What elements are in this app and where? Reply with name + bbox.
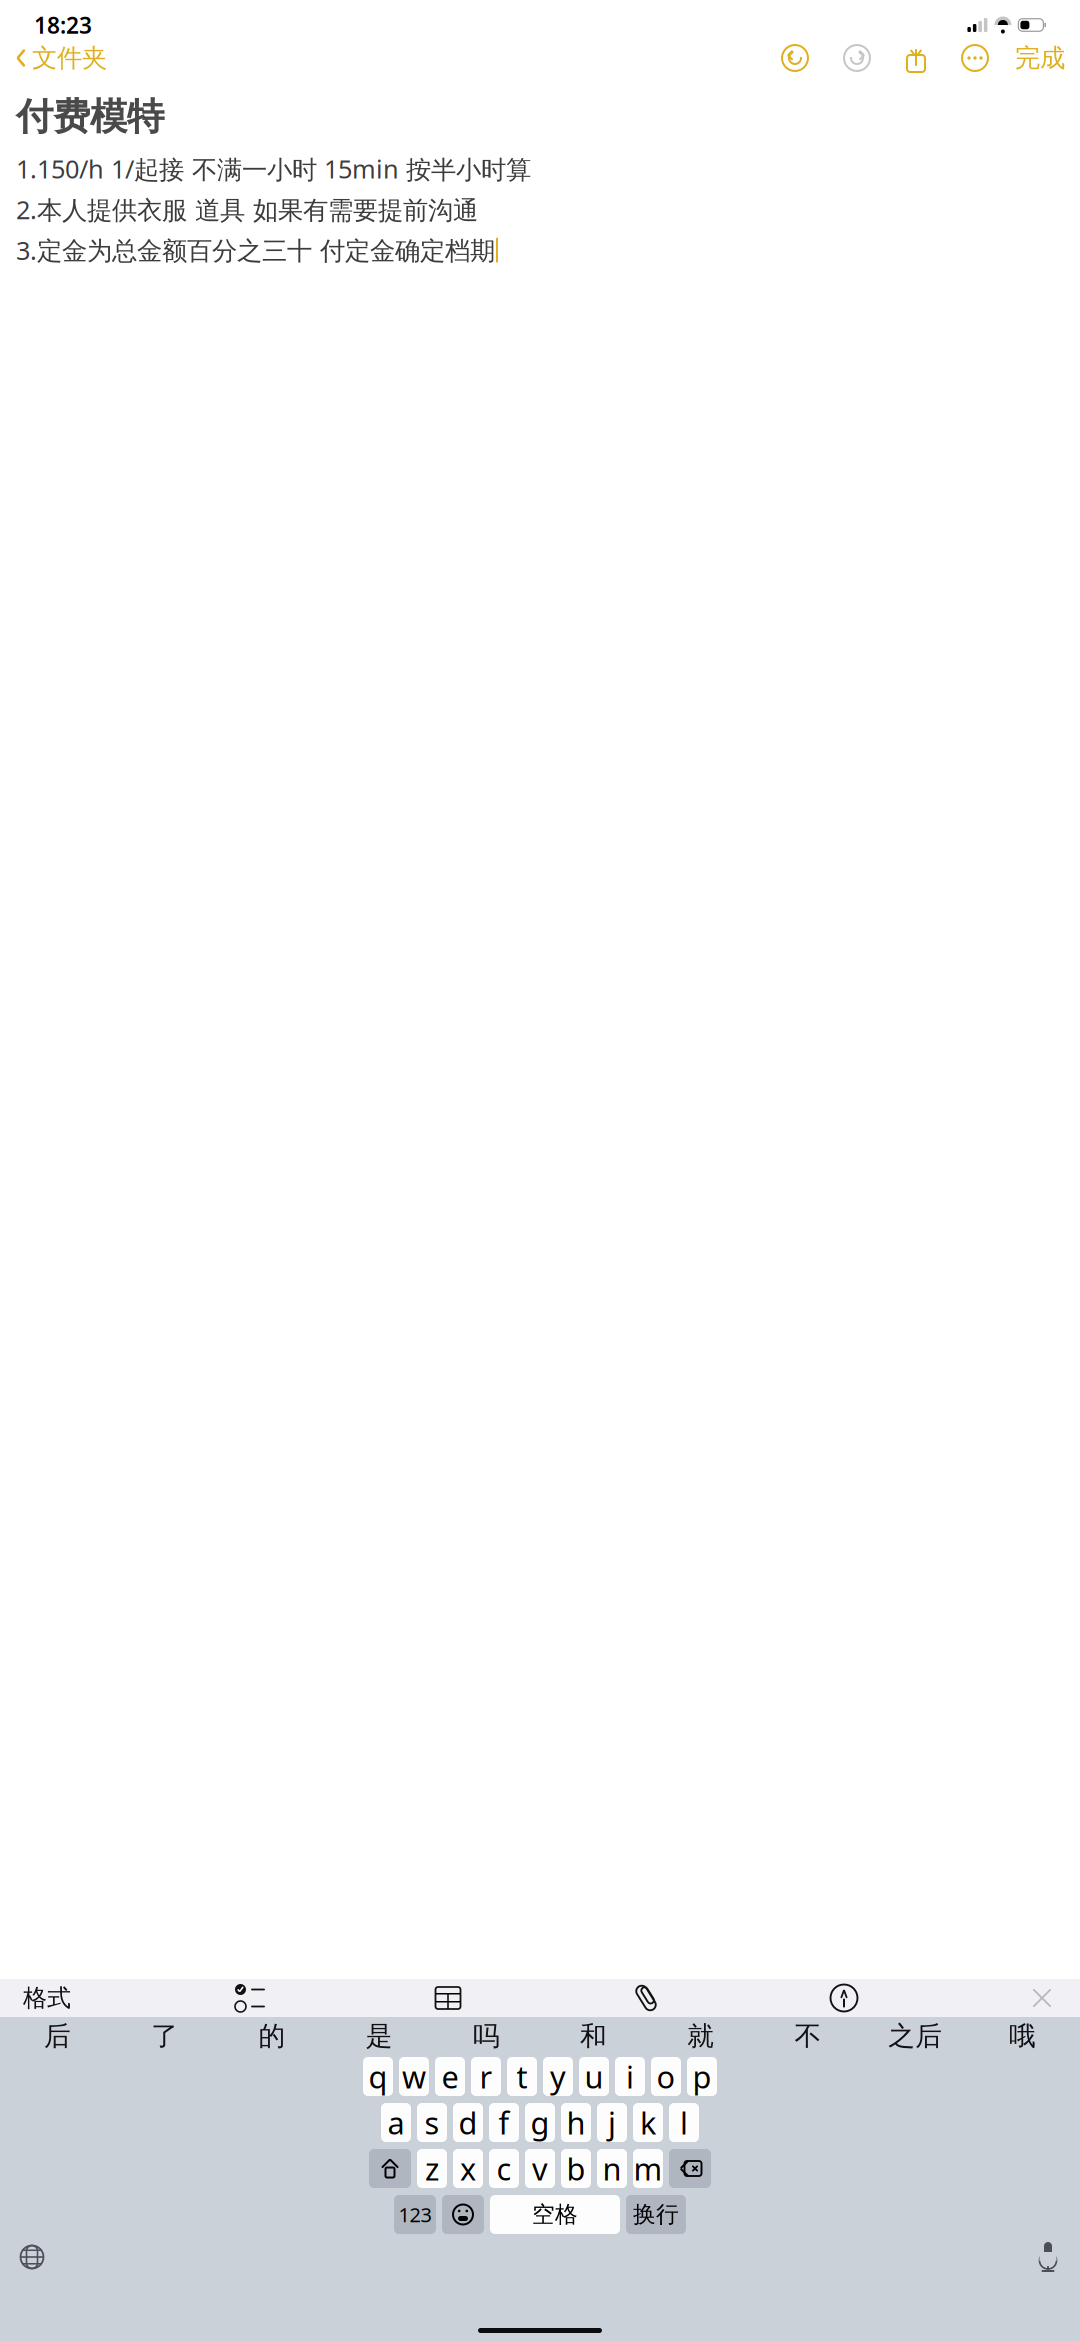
button[interactable]: Redo [837,38,877,78]
staticText: e [441,2056,458,2097]
button[interactable]: x [453,2149,483,2188]
button[interactable]: l [669,2103,699,2142]
button[interactable]: 格式 [20,1979,74,2017]
button[interactable]: Shift [369,2149,411,2188]
button[interactable]: g [525,2103,555,2142]
button[interactable]: Emoji [442,2195,484,2234]
button[interactable]: h [561,2103,591,2142]
staticText: 1.150/h 1/起接 不满一小时 15min 按半小时算 [16,152,531,186]
staticText: u [584,2056,603,2097]
staticText: v [532,2148,548,2189]
staticText: 完成 [1015,42,1065,73]
button[interactable]: 123 [394,2195,436,2234]
button[interactable]: i [615,2057,645,2096]
staticText: 3.定金为总金额百分之三十 付定金确定档期 [16,233,495,267]
staticText: w [402,2056,426,2097]
staticText: 吗 [473,2020,500,2052]
button[interactable]: 之后 [862,2017,969,2055]
button[interactable]: More [955,38,995,78]
button[interactable]: Share [899,38,933,78]
button[interactable]: Switch keyboard [10,2240,54,2274]
button[interactable]: e [435,2057,465,2096]
button[interactable]: Table [426,1979,470,2017]
button[interactable]: Checklist [228,1979,272,2017]
button[interactable]: 完成 [1015,36,1065,79]
staticText: 文件夹 [32,42,107,73]
button[interactable]: y [543,2057,573,2096]
button[interactable]: 的 [218,2017,326,2055]
button[interactable]: p [687,2057,717,2096]
button[interactable]: 文件夹 [15,36,113,79]
button[interactable]: 换行 [626,2195,686,2234]
button[interactable]: b [561,2149,591,2188]
staticText: 就 [687,2020,714,2052]
button[interactable]: Markup [822,1979,866,2017]
staticText: 18:23 [34,10,92,40]
button[interactable]: Dictation [1026,2240,1070,2274]
button[interactable]: 空格 [490,2195,620,2234]
button[interactable]: Delete [669,2149,711,2188]
button[interactable]: 和 [540,2017,647,2055]
staticText: 之后 [888,2020,942,2052]
staticText: 的 [258,2020,285,2052]
button[interactable]: d [453,2103,483,2142]
staticText: 是 [366,2020,393,2052]
button[interactable]: o [651,2057,681,2096]
button[interactable]: j [597,2103,627,2142]
staticText: b [566,2148,585,2189]
staticText: r [479,2056,492,2097]
staticText: j [608,2102,616,2143]
button[interactable]: Close keyboard [1020,1979,1064,2017]
button[interactable]: 后 [4,2017,111,2055]
staticText: f [498,2102,509,2143]
staticText: 123 [398,2201,431,2228]
staticText: y [550,2056,566,2097]
staticText: q [368,2056,387,2097]
staticText: p [692,2056,711,2097]
staticText: x [460,2148,476,2189]
button[interactable]: q [363,2057,393,2096]
staticText: h [566,2102,585,2143]
button[interactable]: c [489,2149,519,2188]
staticText: m [633,2148,662,2189]
button[interactable]: 就 [647,2017,754,2055]
staticText: k [640,2102,656,2143]
button[interactable]: z [417,2149,447,2188]
button[interactable]: 哦 [969,2017,1076,2055]
staticText: z [425,2148,439,2189]
staticText: 和 [580,2020,607,2052]
button[interactable]: Undo [775,38,815,78]
staticText: o [656,2056,675,2097]
button[interactable]: w [399,2057,429,2096]
button[interactable]: 不 [754,2017,862,2055]
button[interactable]: 是 [326,2017,433,2055]
staticText: n [602,2148,621,2189]
button[interactable]: 吗 [433,2017,540,2055]
staticText: 不 [794,2020,821,2052]
button[interactable]: n [597,2149,627,2188]
button[interactable]: t [507,2057,537,2096]
button[interactable]: s [417,2103,447,2142]
button[interactable]: k [633,2103,663,2142]
staticText: g [530,2102,549,2143]
button[interactable]: Attach [624,1979,668,2017]
button[interactable]: r [471,2057,501,2096]
staticText: 后 [44,2020,71,2052]
staticText: 格式 [23,1983,71,2013]
button[interactable]: 了 [111,2017,218,2055]
staticText: l [680,2102,688,2143]
staticText: 付费模特 [16,94,164,140]
staticText: 空格 [532,2201,578,2228]
staticText: i [626,2056,634,2097]
button[interactable]: f [489,2103,519,2142]
staticText: a [387,2102,404,2143]
button[interactable]: m [633,2149,663,2188]
button[interactable]: u [579,2057,609,2096]
button[interactable]: v [525,2149,555,2188]
staticText: 哦 [1009,2020,1036,2052]
staticText: d [458,2102,477,2143]
button[interactable]: a [381,2103,411,2142]
staticText: 了 [151,2020,178,2052]
staticText: s [424,2102,439,2143]
staticText: c [496,2148,511,2189]
